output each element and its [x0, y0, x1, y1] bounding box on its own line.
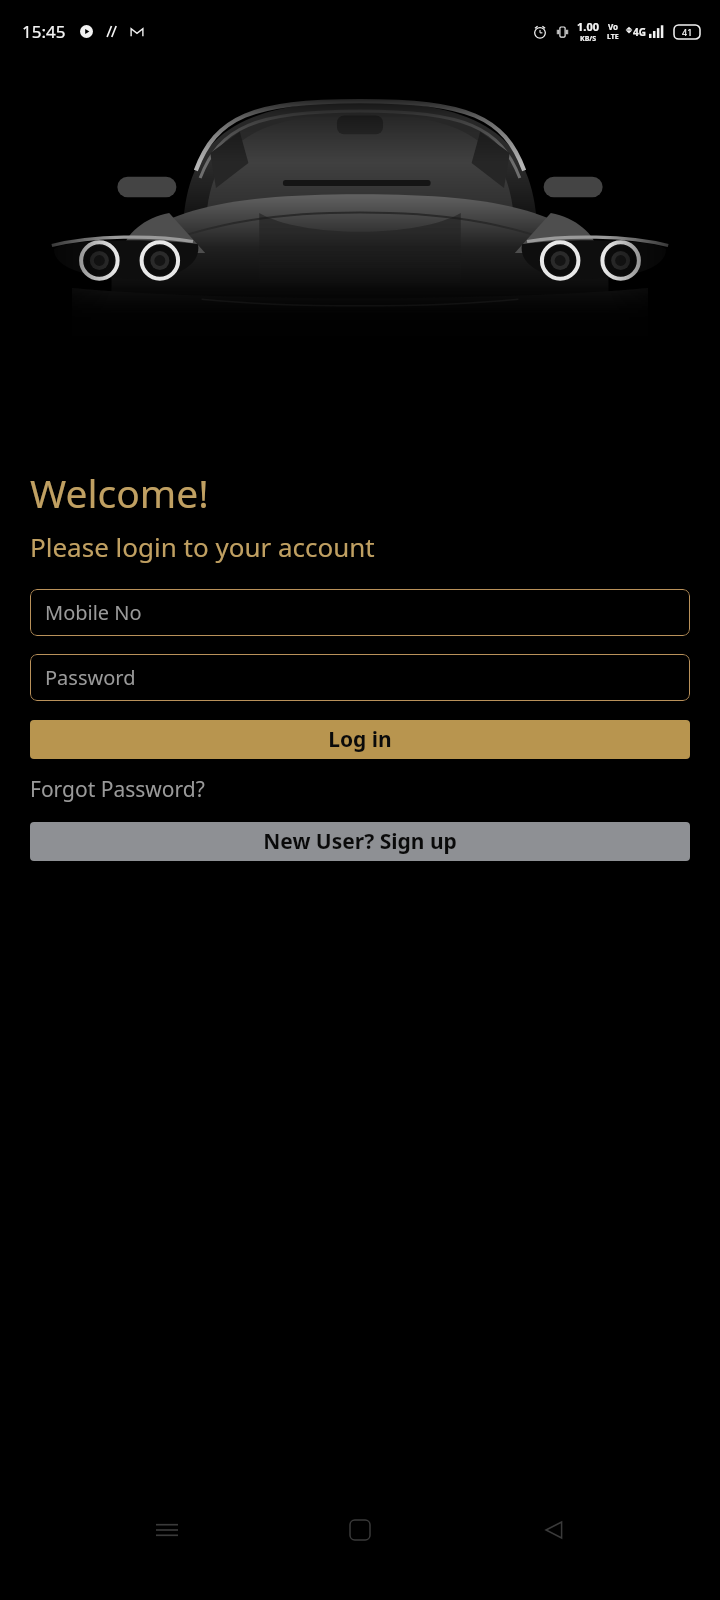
staticText: Password [45, 664, 136, 691]
staticText: Vo [608, 21, 619, 32]
staticText: 1.00 [577, 19, 599, 34]
button[interactable]: Mobile No [30, 589, 690, 636]
button[interactable]: Forgot Password? [30, 775, 205, 804]
staticText: Log in [328, 725, 392, 754]
button[interactable]: Recent apps [140, 1503, 194, 1557]
staticText: Welcome! [30, 466, 209, 519]
staticText: Please login to your account [30, 529, 375, 564]
button[interactable]: New User? Sign up [30, 822, 690, 861]
button[interactable]: Log in [30, 720, 690, 759]
staticText: KB/S [580, 34, 597, 44]
staticText: 15:45 [22, 20, 66, 43]
staticText: 41 [682, 26, 693, 38]
button[interactable]: Back [527, 1503, 581, 1557]
staticText: Mobile No [45, 599, 142, 626]
button[interactable]: Password [30, 654, 690, 701]
button[interactable]: Home [333, 1503, 387, 1557]
staticText: 4G [633, 25, 646, 39]
staticText: LTE [607, 32, 619, 42]
staticText: New User? Sign up [263, 827, 457, 856]
